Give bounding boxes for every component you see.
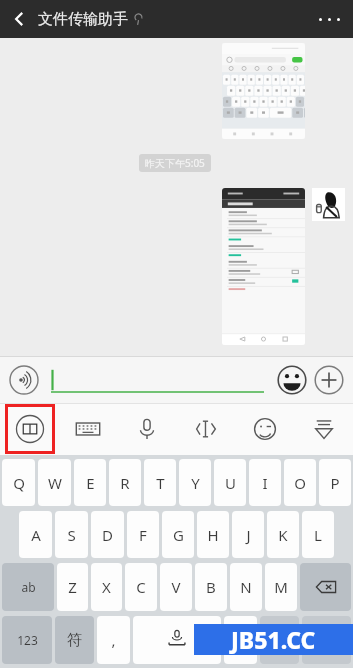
button[interactable]: Image message	[222, 43, 305, 139]
button[interactable]: E	[74, 459, 106, 506]
staticText: Z	[68, 577, 77, 597]
button[interactable]: Voice input	[117, 403, 176, 455]
staticText: M	[274, 577, 288, 597]
staticText: 文件传输助手	[38, 10, 128, 29]
staticText: 符	[67, 631, 82, 650]
button[interactable]: Q	[2, 459, 35, 506]
button[interactable]: Keyboard	[59, 403, 117, 455]
staticText: 昨天下午5:05	[145, 156, 205, 170]
staticText: Y	[191, 473, 200, 493]
button[interactable]: 符	[55, 616, 94, 664]
staticText: V	[171, 577, 181, 597]
button[interactable]: A	[19, 511, 52, 558]
button[interactable]: More functions	[314, 365, 344, 395]
button[interactable]: V	[160, 563, 192, 611]
button[interactable]: Input method	[0, 403, 59, 455]
button[interactable]: N	[230, 563, 262, 611]
button[interactable]: L	[302, 511, 334, 558]
button[interactable]: R	[109, 459, 141, 506]
button[interactable]: Emoji	[235, 403, 294, 455]
button[interactable]: I	[249, 459, 281, 506]
staticText: B	[206, 577, 216, 597]
button[interactable]: B	[195, 563, 227, 611]
button[interactable]: Emoji	[277, 365, 307, 395]
staticText: H	[207, 525, 219, 545]
staticText: K	[278, 525, 288, 545]
staticText: W	[48, 473, 62, 493]
staticText: G	[173, 525, 184, 545]
button[interactable]: W	[38, 459, 71, 506]
staticText: P	[330, 473, 340, 493]
button[interactable]: X	[91, 563, 122, 611]
staticText: T	[156, 473, 165, 493]
staticText: X	[102, 577, 111, 597]
button[interactable]: Handwriting	[176, 403, 235, 455]
staticText: J	[246, 525, 251, 545]
button[interactable]: 123	[2, 616, 52, 664]
button[interactable]: G	[162, 511, 194, 558]
button[interactable]: Avatar	[312, 188, 345, 221]
staticText: U	[225, 473, 236, 493]
staticText: C	[136, 577, 146, 597]
button[interactable]: S	[55, 511, 88, 558]
button[interactable]: P	[319, 459, 351, 506]
button[interactable]: ,	[97, 616, 130, 664]
staticText: L	[314, 525, 322, 545]
button[interactable]	[133, 616, 221, 664]
staticText: D	[102, 525, 113, 545]
staticText: JB51.CC	[231, 624, 316, 655]
staticText: 123	[17, 632, 38, 648]
button[interactable]: 。	[224, 616, 257, 664]
button[interactable]: J	[232, 511, 264, 558]
button[interactable]	[302, 616, 351, 664]
button[interactable]: T	[144, 459, 176, 506]
button[interactable]: Hide keyboard	[294, 403, 353, 455]
button[interactable]: O	[284, 459, 316, 506]
button[interactable]: C	[125, 563, 157, 611]
button[interactable]: F	[127, 511, 159, 558]
staticText: Q	[13, 473, 25, 493]
button[interactable]: U	[214, 459, 246, 506]
staticText: R	[120, 473, 130, 493]
staticText: 。	[233, 631, 248, 650]
button[interactable]: Voice input	[9, 365, 39, 395]
staticText: I	[262, 473, 268, 493]
staticText: N	[240, 577, 252, 597]
staticText: S	[67, 525, 76, 545]
button[interactable]: Z	[57, 563, 88, 611]
button[interactable]: M	[265, 563, 297, 611]
button[interactable]: Y	[179, 459, 211, 506]
button[interactable]: Back	[0, 0, 38, 38]
button[interactable]	[49, 363, 270, 397]
button[interactable]: ab	[2, 563, 54, 611]
button[interactable]: More options	[305, 0, 353, 38]
staticText: ,	[111, 630, 116, 650]
button[interactable]: K	[267, 511, 299, 558]
staticText: O	[294, 473, 306, 493]
staticText: ab	[21, 579, 36, 595]
button[interactable]: H	[197, 511, 229, 558]
staticText: A	[31, 525, 41, 545]
button[interactable]: D	[91, 511, 124, 558]
button[interactable]	[260, 616, 299, 664]
staticText: E	[86, 473, 95, 493]
staticText: F	[139, 525, 147, 545]
button[interactable]: Image message	[222, 188, 305, 345]
button[interactable]	[300, 563, 351, 611]
